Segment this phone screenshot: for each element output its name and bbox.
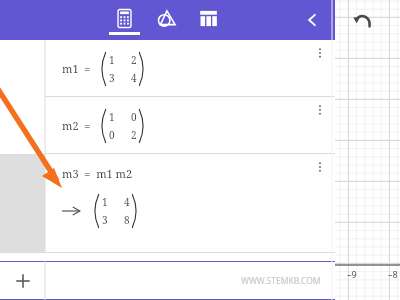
button[interactable]: m2 = [0, 97, 335, 154]
staticText: –8 [388, 268, 398, 280]
staticText: 8 [124, 213, 130, 227]
button[interactable]: m3 = m1 m2 [0, 154, 335, 253]
staticText: 0 [131, 110, 137, 124]
staticText: –9 [347, 268, 357, 280]
button[interactable]: Algebra view [103, 0, 145, 40]
button[interactable]: Geometry view [145, 0, 187, 40]
staticText: 1 [102, 195, 108, 209]
button[interactable]: Undo [349, 8, 375, 34]
staticText: 3 [102, 213, 108, 227]
staticText: 0 [109, 128, 115, 142]
staticText: m3 = m1 m2 [62, 166, 133, 181]
button[interactable]: Row options [312, 45, 328, 61]
staticText: 4 [131, 71, 137, 85]
staticText: 2 [131, 53, 137, 67]
button[interactable]: Row options [312, 102, 328, 118]
button[interactable]: Add input row [0, 261, 45, 300]
staticText: m2 = [62, 118, 91, 133]
button[interactable]: Collapse panel [297, 5, 327, 35]
staticText: m1 = [62, 61, 91, 76]
button[interactable]: Row options [312, 159, 328, 175]
staticText: 4 [124, 195, 130, 209]
staticText: 3 [109, 71, 115, 85]
button[interactable]: m1 = [0, 40, 335, 97]
button[interactable]: Spreadsheet view [187, 0, 229, 40]
staticText: WWW.STEMKB.COM [241, 275, 321, 287]
staticText: 1 [109, 53, 115, 67]
staticText: 1 [109, 110, 115, 124]
staticText: 2 [131, 128, 137, 142]
